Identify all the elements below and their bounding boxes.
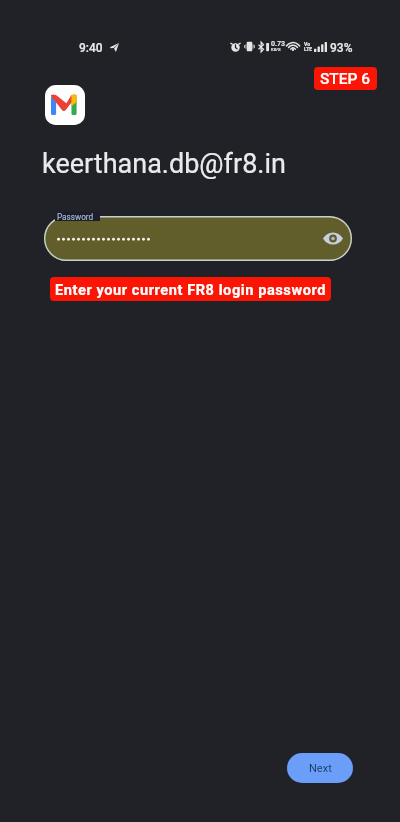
button[interactable]: STEP 6 [314,67,377,90]
button[interactable]: Next [287,753,353,783]
staticText: STEP 6 [320,70,371,88]
staticText: Enter your current FR8 login password [55,281,326,298]
staticText: 93% [330,41,353,55]
staticText: 0.73 [271,40,287,48]
button[interactable]: Show password [321,226,345,250]
staticText: Next [309,762,332,775]
staticText: 9:40 [79,41,103,55]
staticText: LTE [304,46,313,52]
staticText: Vo [304,41,310,47]
staticText: keerthana.db@fr8.in [42,148,286,180]
button[interactable]: Show password [44,216,352,261]
staticText: KB/S [271,47,287,52]
staticText: Password [57,212,94,222]
